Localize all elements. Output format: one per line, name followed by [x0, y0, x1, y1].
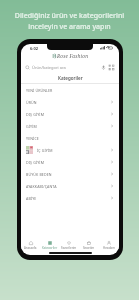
staticText: Dilediğiniz ürün ve kategorilerini incel… [0, 11, 139, 31]
button[interactable]: ÜRÜN [21, 96, 119, 108]
button[interactable]: Ürün/kategori ara [25, 61, 99, 73]
staticText: DIŞ GİYİM [26, 112, 110, 117]
button[interactable]: AYAKKABI/ÇANTA [21, 180, 119, 192]
staticText: Rose Fashion [57, 53, 89, 59]
staticText: ÜRÜN [26, 100, 110, 105]
staticText: Anasayfa [24, 246, 37, 249]
button[interactable]: Favorilerim [59, 240, 79, 249]
staticText: Hesabım [103, 246, 116, 249]
button[interactable]: Sesli arama [99, 63, 107, 71]
staticText: Sepetim [83, 246, 95, 249]
button[interactable]: YENİCE [21, 132, 119, 144]
button[interactable]: GİYİM [21, 120, 119, 132]
button[interactable]: BÜYÜK BEDEN [21, 168, 119, 180]
button[interactable]: ABİYE [21, 192, 119, 204]
staticText: GİYİM [26, 124, 110, 129]
button[interactable]: Sepetim [79, 240, 99, 249]
staticText: BÜYÜK BEDEN [26, 172, 110, 177]
staticText: ABİYE [26, 196, 110, 201]
staticText: Kategoriler [42, 246, 58, 249]
staticText: YENİ ÜRÜNLER [26, 88, 114, 93]
button[interactable]: Kategoriler [40, 240, 59, 249]
staticText: AYAKKABI/ÇANTA [26, 184, 110, 189]
button[interactable]: Hesabım [99, 240, 119, 249]
button[interactable]: Anasayfa [21, 240, 40, 249]
staticText: Kategoriler [58, 75, 83, 81]
button[interactable]: Kategoriler [21, 73, 119, 83]
button[interactable]: İÇ GİYİM [21, 144, 119, 156]
staticText: Favorilerim [61, 246, 77, 249]
staticText: DIŞ GİYİM [26, 160, 110, 165]
staticText: Ürün/kategori ara [32, 65, 66, 70]
staticText: 6:02 [30, 46, 38, 51]
button[interactable]: DIŞ GİYİM [21, 108, 119, 120]
button[interactable]: Barkod tara [107, 63, 115, 71]
staticText: İÇ GİYİM [37, 148, 110, 153]
staticText: YENİCE [26, 136, 114, 141]
button[interactable]: YENİ ÜRÜNLER [21, 84, 119, 96]
button[interactable]: DIŞ GİYİM [21, 156, 119, 168]
